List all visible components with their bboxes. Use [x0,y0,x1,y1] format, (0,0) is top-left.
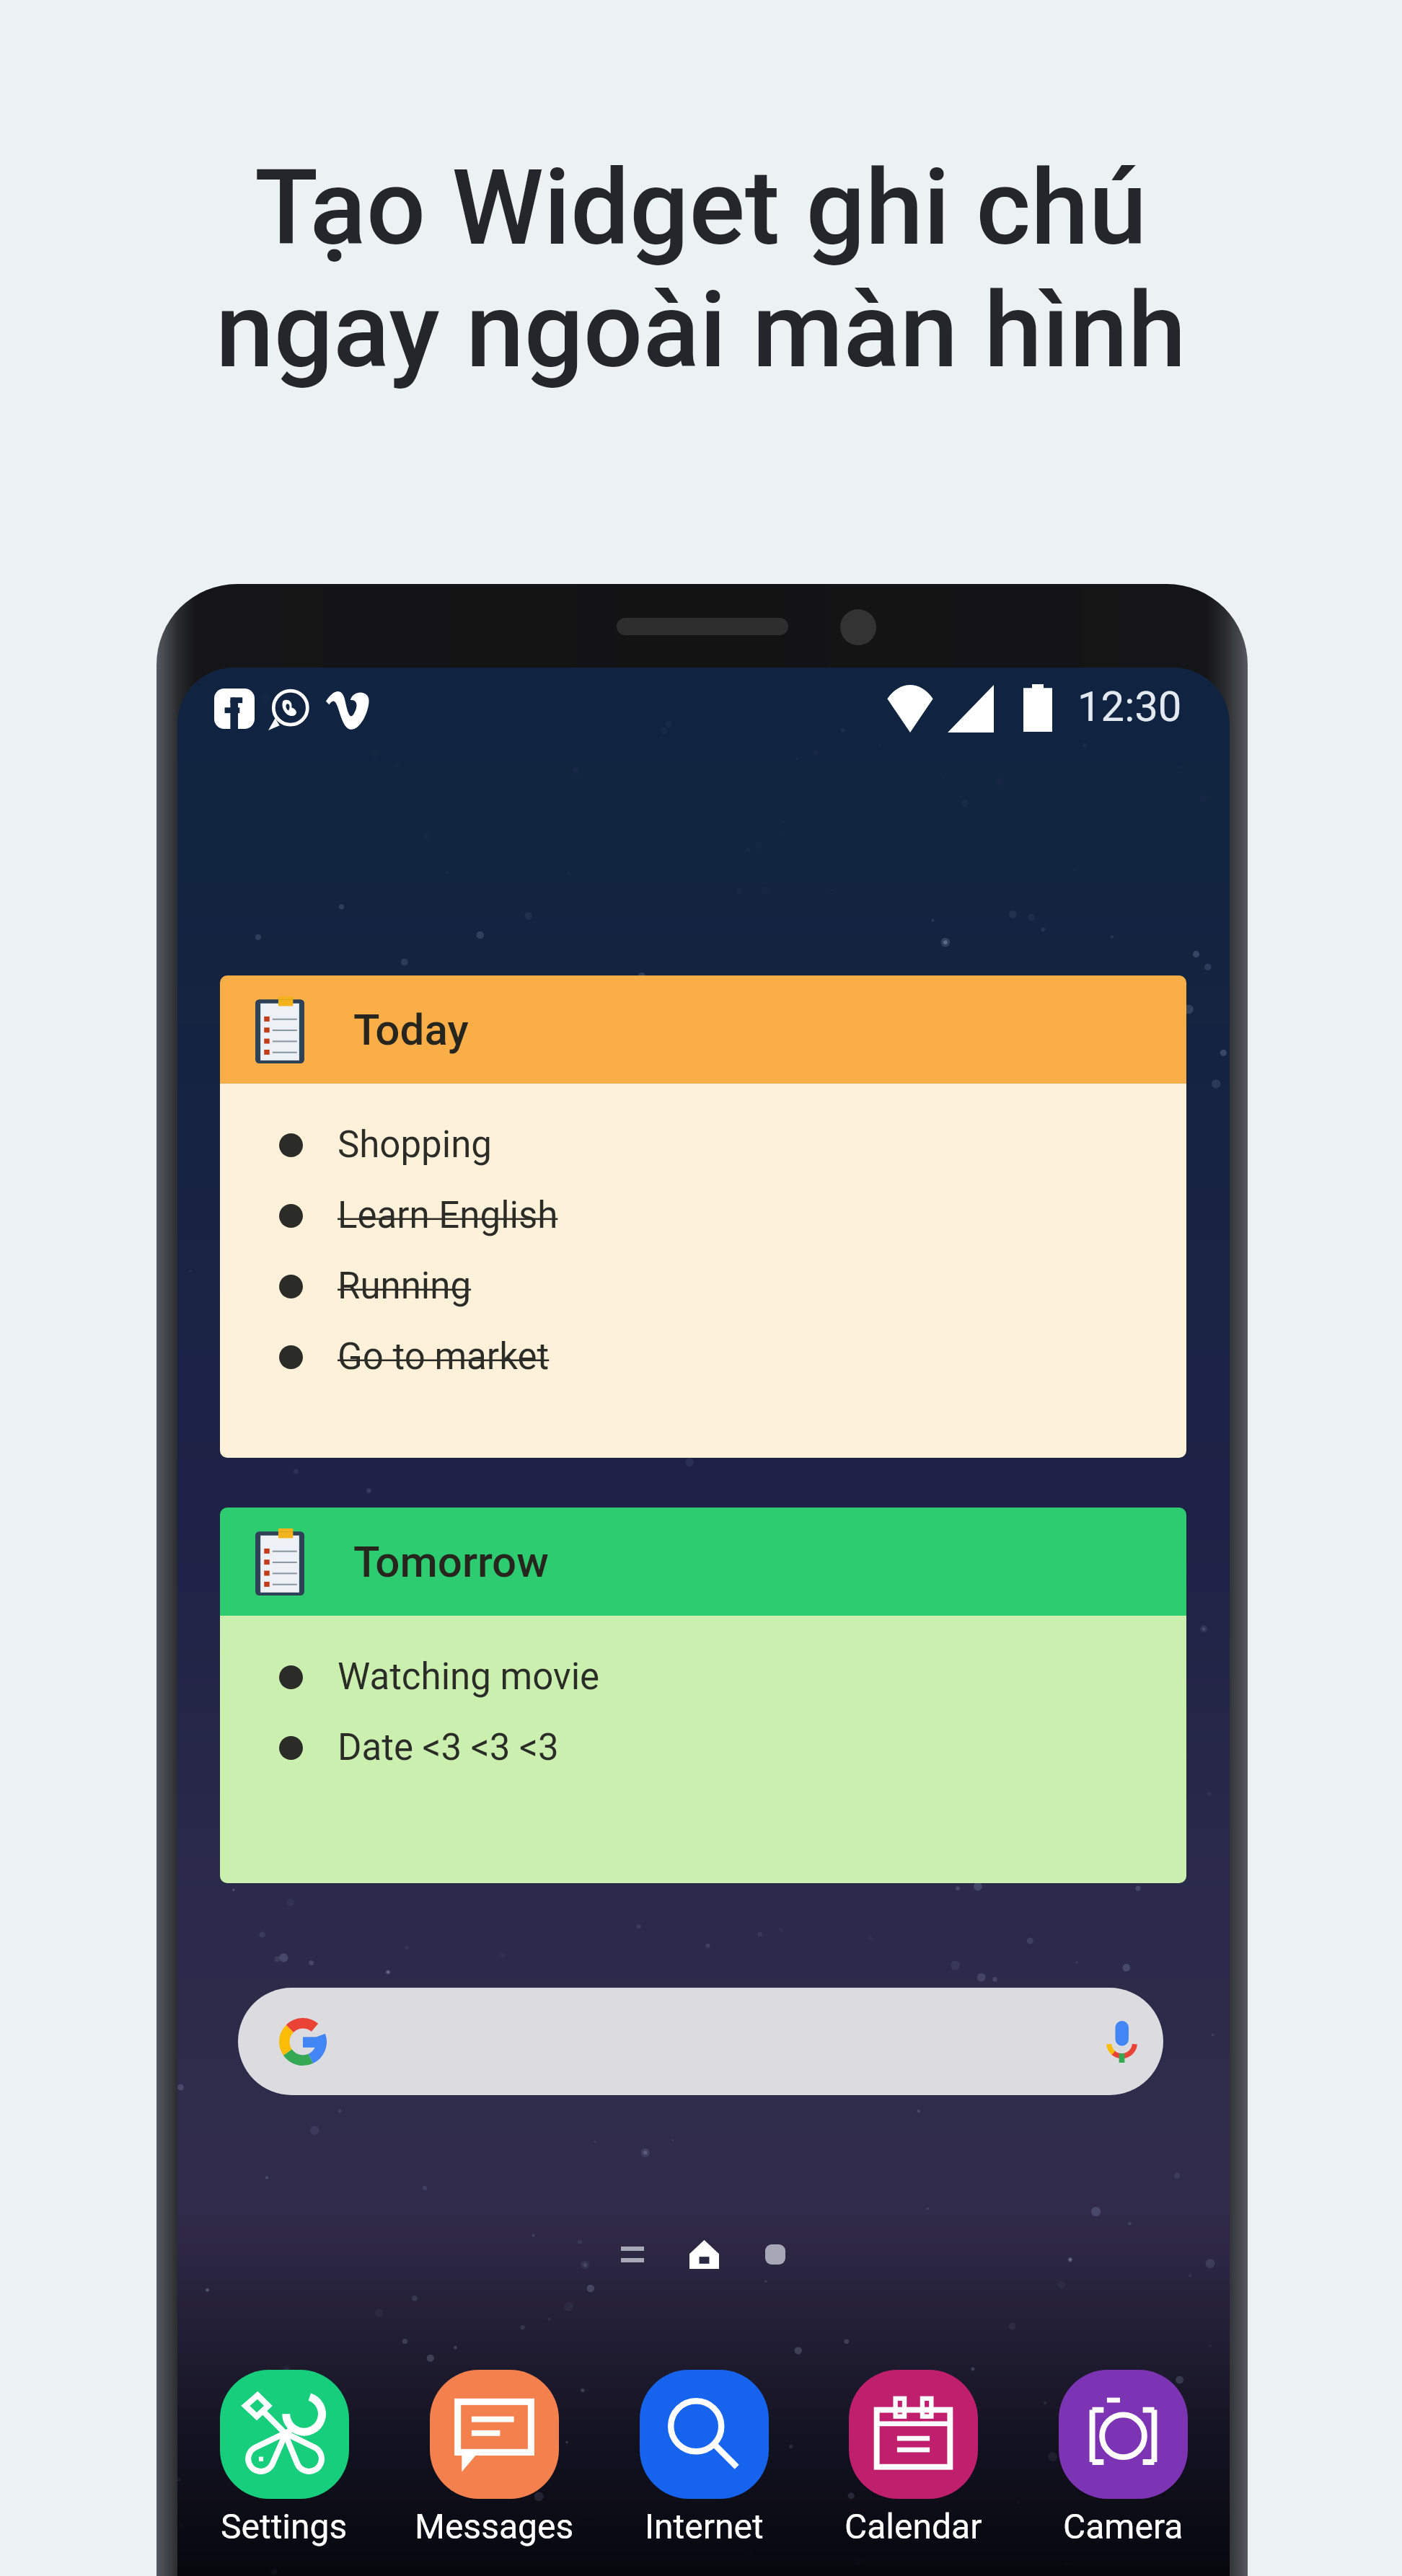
button[interactable]: Shopping [220,1110,1186,1180]
button[interactable]: Learn English [220,1180,1186,1251]
button[interactable]: Running [220,1251,1186,1322]
button[interactable]: Recents [599,2229,666,2280]
staticText: Tomorrow [353,1536,549,1587]
staticText: Watching movie [338,1655,600,1699]
staticText: Camera [1063,2506,1183,2546]
staticText: Date <3 <3 <3 [338,1726,559,1769]
button[interactable]: Settings [180,2370,389,2546]
button[interactable]: Home [671,2229,737,2280]
button[interactable]: Calendar [808,2370,1018,2546]
staticText: Settings [221,2506,348,2546]
button[interactable]: Tomorrow [220,1508,1186,1616]
button[interactable]: Today [220,975,1186,1084]
button[interactable]: Messages [389,2370,599,2546]
staticText: Internet [645,2506,764,2546]
other: Facebook notification [214,689,255,729]
other: WhatsApp notification [268,690,309,730]
staticText: 12:30 [1077,682,1182,731]
button[interactable]: Date <3 <3 <3 [220,1712,1186,1783]
staticText: Tạo Widget ghi chú [255,146,1147,269]
button[interactable]: Camera [1018,2370,1227,2546]
button[interactable]: Internet [599,2370,808,2546]
staticText: Messages [415,2506,574,2546]
staticText: Today [353,1004,469,1055]
button[interactable]: Google search [238,1988,1163,2095]
staticText: Running [338,1265,472,1308]
staticText: Learn English [338,1194,558,1237]
staticText: Go to market [338,1335,550,1378]
staticText: Calendar [845,2506,982,2546]
staticText: Shopping [338,1123,492,1167]
button[interactable]: Go to market [220,1322,1186,1392]
other: Vimeo notification [325,689,371,730]
button[interactable]: Watching movie [220,1642,1186,1712]
staticText: ngay ngoài màn hình [216,269,1186,391]
button[interactable]: Back [742,2229,808,2280]
